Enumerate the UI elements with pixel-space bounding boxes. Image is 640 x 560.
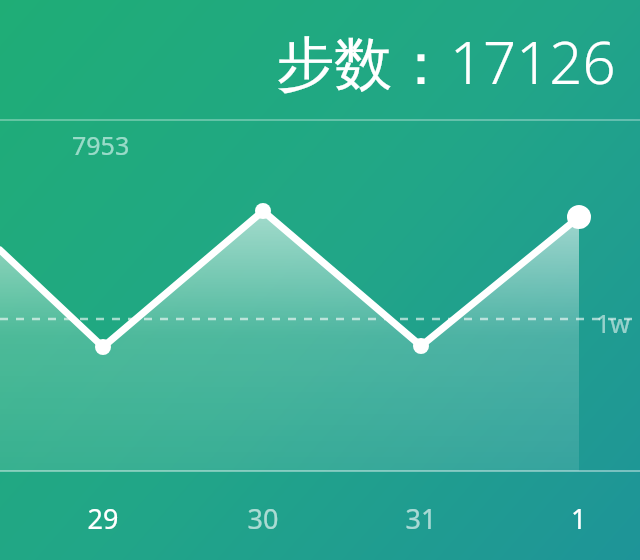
button[interactable]: Steps chart bbox=[0, 0, 640, 560]
